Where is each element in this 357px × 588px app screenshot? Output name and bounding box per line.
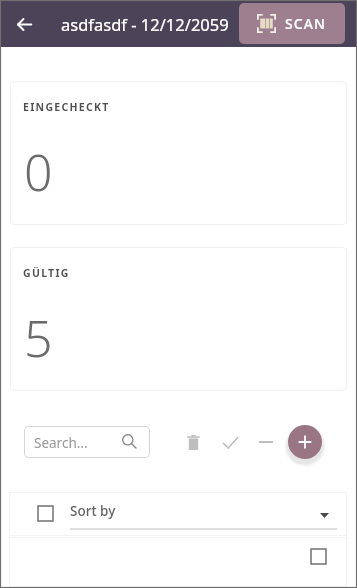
button[interactable]: Select all [30,498,60,528]
staticText: Sort by [70,502,116,520]
button[interactable]: Check [216,428,244,456]
staticText: SCAN [285,14,327,33]
button[interactable]: EINGECHECKT [10,81,347,225]
staticText: GÜLTIG [23,266,70,280]
button[interactable]: Back [2,2,46,46]
button[interactable]: Add [288,425,322,459]
button[interactable]: Sort by [70,498,337,530]
staticText: 0 [24,138,53,206]
button[interactable]: SCAN [239,3,345,44]
button[interactable]: GÜLTIG [10,247,347,391]
button[interactable]: Delete [179,428,207,456]
staticText: EINGECHECKT [23,100,110,114]
button[interactable]: Search... [24,426,150,458]
staticText: Search... [34,434,88,452]
staticText: 5 [24,304,53,372]
staticText: asdfasdf - 12/12/2059 [61,13,229,35]
button[interactable]: Select item [304,542,332,570]
button[interactable]: Remove [252,428,280,456]
